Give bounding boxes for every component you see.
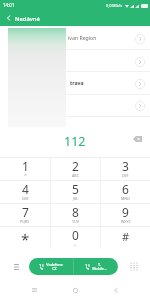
button[interactable]: 6 (101, 180, 150, 203)
button[interactable]: Call details (134, 56, 145, 67)
button[interactable]: Back (4, 13, 13, 22)
button[interactable]: Call details (134, 33, 145, 44)
staticText: ABC (72, 173, 79, 178)
button[interactable]: # (101, 226, 150, 249)
staticText: 0,00Kb/s (106, 3, 123, 8)
button[interactable]: 7 (0, 203, 50, 226)
staticText: ∞ (24, 173, 27, 177)
staticText: + (74, 242, 77, 247)
staticText: 0 (72, 227, 79, 243)
staticText: 8 (72, 204, 79, 220)
staticText: TUV (72, 219, 79, 224)
button[interactable]: Menu (11, 258, 22, 275)
button[interactable]: Call details (0, 94, 150, 116)
button[interactable]: Call details (134, 78, 145, 89)
staticText: 6 (122, 181, 129, 197)
staticText: 2 (72, 158, 79, 174)
staticText: 14:01 (3, 2, 15, 8)
staticText: PQRS (20, 219, 30, 224)
button[interactable]: Call details (0, 50, 150, 72)
button[interactable]: Back (109, 283, 123, 297)
staticText: 3 (122, 158, 129, 174)
button[interactable]: Home (68, 283, 82, 297)
staticText: 7 (22, 204, 29, 220)
button[interactable]: 4 (0, 180, 50, 203)
staticText: 112 (64, 133, 86, 150)
button[interactable]: 1 (0, 157, 50, 180)
staticText: GHI (22, 196, 29, 201)
button[interactable]: 0 (51, 226, 100, 249)
staticText: trava (70, 79, 84, 86)
button[interactable]: 2 (51, 157, 100, 180)
button[interactable]: Dialpad (128, 258, 139, 275)
button[interactable]: Recents (27, 283, 41, 297)
staticText: JKL (73, 196, 79, 201)
staticText: 1 (22, 158, 29, 174)
button[interactable]: 3 (101, 157, 150, 180)
button[interactable]: * (0, 226, 50, 249)
staticText: # (122, 229, 130, 244)
staticText: Nedávné (15, 15, 40, 23)
button[interactable]: 8 (51, 203, 100, 226)
staticText: Vodafone CZ (46, 262, 63, 272)
button[interactable]: trava (0, 72, 150, 94)
staticText: MNO (121, 196, 130, 201)
staticText: 9 (122, 204, 129, 220)
button[interactable]: 5 (51, 180, 100, 203)
button[interactable]: 9 (101, 203, 150, 226)
staticText: 4 (22, 181, 29, 197)
button[interactable]: Call details (134, 100, 145, 111)
staticText: ivan Region (68, 34, 97, 41)
staticText: DEF (122, 173, 129, 178)
staticText: 5 (72, 181, 79, 197)
button[interactable]: ivan Region (0, 27, 150, 49)
staticText: WXYZ (121, 219, 131, 224)
button[interactable]: Vodafone CZ (29, 258, 73, 275)
staticText: T- Mobile... (92, 262, 107, 272)
button[interactable]: Backspace (131, 132, 144, 145)
button[interactable]: T- Mobile... (74, 258, 118, 275)
staticText: * (21, 229, 30, 249)
